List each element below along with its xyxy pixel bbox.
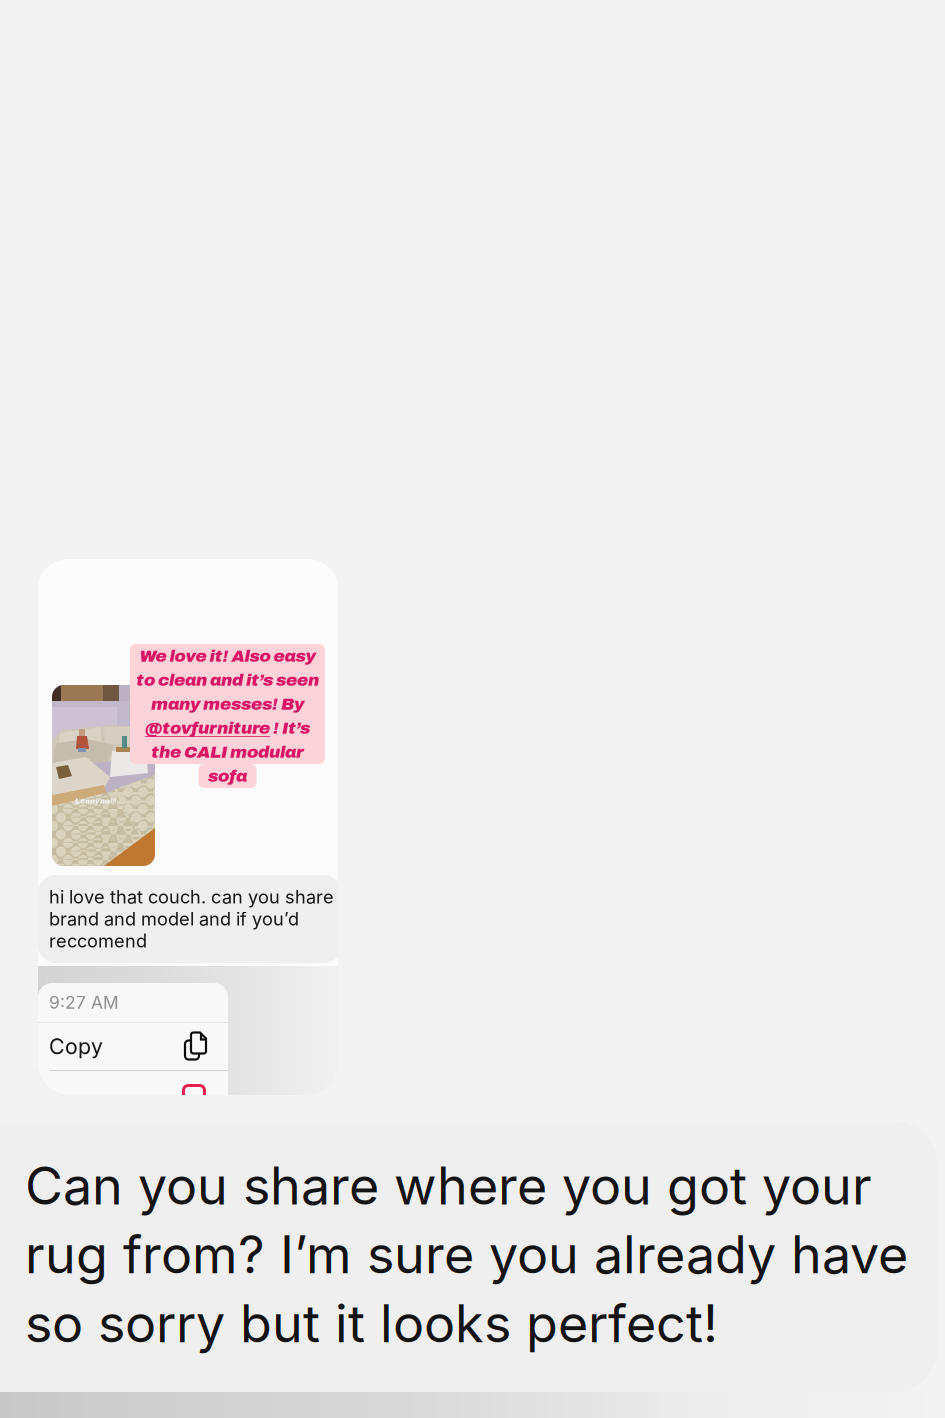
staticText: Copy [49, 1034, 103, 1059]
button[interactable]: Story reply: We love it! Also easy to cl… [38, 559, 338, 1095]
staticText: the CALI modular [151, 743, 304, 761]
button[interactable]: Can you share where you got your rug fro… [0, 1122, 937, 1392]
button[interactable]: Copy [38, 1023, 228, 1070]
staticText: Lenny no!!! [75, 797, 116, 805]
staticText: We love it! Also easy [139, 647, 315, 665]
staticText: to clean and it’s seen [136, 671, 319, 689]
staticText: 9:27 AM [49, 992, 119, 1013]
staticText: Can you share where you got your rug fro… [25, 1154, 908, 1355]
staticText: sofa [208, 767, 247, 785]
staticText: @tovfurniture ! It’s [145, 719, 310, 737]
staticText: many messes! By [151, 695, 304, 713]
button[interactable]: Delete [38, 1071, 228, 1117]
staticText: hi love that couch. can you share brand … [49, 886, 334, 952]
